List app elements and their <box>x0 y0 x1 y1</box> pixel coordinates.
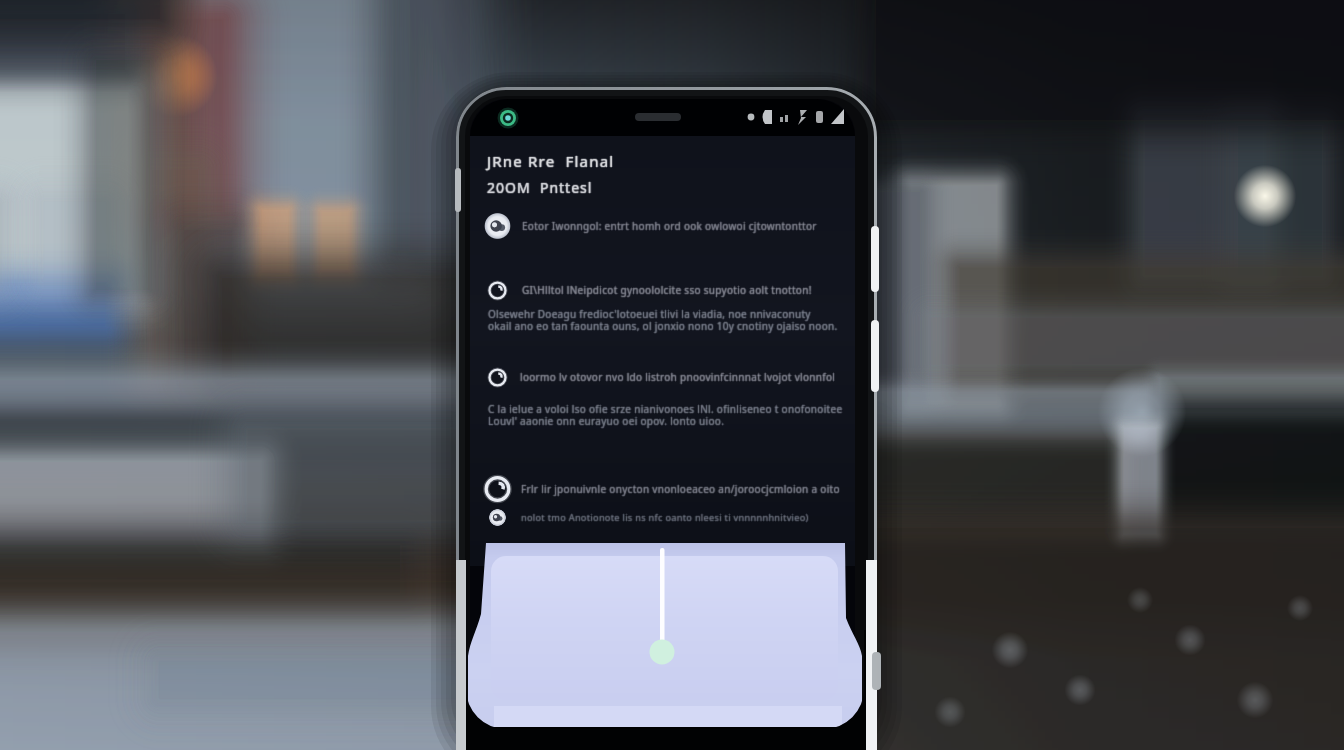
staticText: Olsewehr Doeagu fredioc'lotoeuei tlivi l… <box>488 307 811 321</box>
staticText: Louvl' aaonie onn eurayuo oei opov. lont… <box>488 413 725 427</box>
staticText: Frlr lir jponuivnle onycton vnonloeaceo … <box>521 483 840 497</box>
staticText: nolot tmo Anotionote lis ns nfc oanto nl… <box>521 512 809 525</box>
staticText: JRne Rre Flanal <box>488 151 616 171</box>
staticText: okail ano eo tan faounta ouns, ol jonxio… <box>488 319 838 333</box>
staticText: Eotor Iwonngol: entrt homh ord ook owlow… <box>522 218 817 232</box>
staticText: okail ano eo tan faounta ouns, ol jonxio… <box>488 320 838 334</box>
staticText: nolot tmo Anotionote lis ns nfc oanto nl… <box>522 511 810 524</box>
button[interactable]: nolot tmo Anotionote lis ns nfc oanto nl… <box>486 503 853 531</box>
staticText: C la ielue a voloi lso ofie srze nianivo… <box>488 403 843 417</box>
staticText: JRne Rre Flanal <box>487 152 615 172</box>
staticText: Olsewehr Doeagu fredioc'lotoeuei tlivi l… <box>487 307 810 321</box>
staticText: Olsewehr Doeagu fredioc'lotoeuei tlivi l… <box>488 306 811 320</box>
button[interactable]: Eotor Iwonngol: entrt homh ord ook owlow… <box>482 212 853 240</box>
staticText: Eotor Iwonngol: entrt homh ord ook owlow… <box>521 219 816 233</box>
staticText: 20OM Pnttesl <box>486 178 592 197</box>
staticText: 20OM Pnttesl <box>488 178 594 197</box>
staticText: 20OM Pnttesl <box>487 177 593 196</box>
staticText: 20OM Pnttesl <box>487 178 593 197</box>
staticText: okail ano eo tan faounta ouns, ol jonxio… <box>488 318 838 332</box>
button[interactable]: Frlr lir jponuivnle onycton vnonloeaceo … <box>480 475 853 503</box>
staticText: JRne Rre Flanal <box>487 151 615 171</box>
staticText: nolot tmo Anotionote lis ns nfc oanto nl… <box>521 510 809 523</box>
staticText: Louvl' aaonie onn eurayuo oei opov. lont… <box>487 414 724 428</box>
staticText: okail ano eo tan faounta ouns, ol jonxio… <box>487 319 837 333</box>
staticText: loormo lv otovor nvo ldo listroh pnoovin… <box>520 370 836 384</box>
staticText: Louvl' aaonie onn eurayuo oei opov. lont… <box>488 415 725 429</box>
staticText: Eotor Iwonngol: entrt homh ord ook owlow… <box>523 219 818 233</box>
staticText: Eotor Iwonngol: entrt homh ord ook owlow… <box>522 220 817 234</box>
button[interactable]: GI\Hlltol lNeipdicot gynoololcite sso su… <box>484 276 853 304</box>
staticText: Olsewehr Doeagu fredioc'lotoeuei tlivi l… <box>489 307 812 321</box>
staticText: JRne Rre Flanal <box>487 150 615 170</box>
staticText: Frlr lir jponuivnle onycton vnonloeaceo … <box>520 482 839 496</box>
staticText: okail ano eo tan faounta ouns, ol jonxio… <box>489 319 839 333</box>
staticText: C la ielue a voloi lso ofie srze nianivo… <box>487 402 842 416</box>
button[interactable]: loormo lv otovor nvo ldo listroh pnoovin… <box>484 363 853 391</box>
staticText: Louvl' aaonie onn eurayuo oei opov. lont… <box>489 414 726 428</box>
staticText: Frlr lir jponuivnle onycton vnonloeaceo … <box>521 482 840 496</box>
staticText: loormo lv otovor nvo ldo listroh pnoovin… <box>520 371 836 385</box>
staticText: JRne Rre Flanal <box>486 151 614 171</box>
staticText: 20OM Pnttesl <box>487 179 593 198</box>
staticText: GI\Hlltol lNeipdicot gynoololcite sso su… <box>521 283 811 297</box>
staticText: GI\Hlltol lNeipdicot gynoololcite sso su… <box>523 283 813 297</box>
staticText: GI\Hlltol lNeipdicot gynoololcite sso su… <box>522 284 812 298</box>
staticText: C la ielue a voloi lso ofie srze nianivo… <box>489 402 844 416</box>
staticText: GI\Hlltol lNeipdicot gynoololcite sso su… <box>522 282 812 296</box>
staticText: loormo lv otovor nvo ldo listroh pnoovin… <box>520 369 836 383</box>
staticText: nolot tmo Anotionote lis ns nfc oanto nl… <box>520 511 808 524</box>
button[interactable] <box>0 0 1344 750</box>
staticText: Frlr lir jponuivnle onycton vnonloeaceo … <box>521 481 840 495</box>
staticText: GI\Hlltol lNeipdicot gynoololcite sso su… <box>522 283 812 297</box>
staticText: loormo lv otovor nvo ldo listroh pnoovin… <box>519 370 835 384</box>
staticText: Louvl' aaonie onn eurayuo oei opov. lont… <box>488 414 725 428</box>
staticText: Olsewehr Doeagu fredioc'lotoeuei tlivi l… <box>488 308 811 322</box>
staticText: nolot tmo Anotionote lis ns nfc oanto nl… <box>521 511 809 524</box>
staticText: Frlr lir jponuivnle onycton vnonloeaceo … <box>522 482 841 496</box>
staticText: loormo lv otovor nvo ldo listroh pnoovin… <box>521 370 837 384</box>
staticText: Eotor Iwonngol: entrt homh ord ook owlow… <box>522 219 817 233</box>
staticText: C la ielue a voloi lso ofie srze nianivo… <box>488 402 843 416</box>
staticText: C la ielue a voloi lso ofie srze nianivo… <box>488 401 843 415</box>
